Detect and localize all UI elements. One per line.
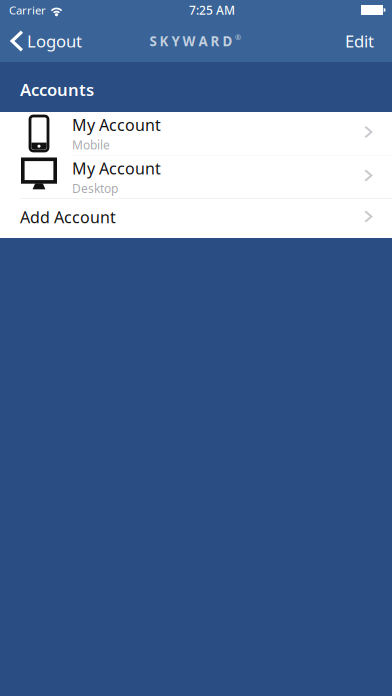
staticText: My Account — [72, 157, 161, 179]
staticText: Add Account — [20, 206, 116, 228]
staticText: ® — [235, 32, 241, 42]
button[interactable]: My Account — [0, 112, 392, 155]
staticText: Accounts — [20, 78, 94, 101]
staticText: 7:25 AM — [189, 2, 235, 18]
staticText: Logout — [27, 30, 82, 52]
staticText: Carrier — [9, 2, 46, 18]
button[interactable]: Logout — [0, 23, 82, 59]
staticText: Edit — [345, 30, 374, 52]
button[interactable]: My Account — [0, 155, 392, 198]
staticText: Desktop — [72, 180, 118, 196]
staticText: My Account — [72, 114, 161, 136]
staticText: S K Y W A R D — [149, 32, 232, 50]
staticText: Mobile — [72, 137, 110, 153]
button[interactable]: Add Account — [0, 199, 392, 238]
button[interactable]: Edit — [345, 23, 392, 59]
